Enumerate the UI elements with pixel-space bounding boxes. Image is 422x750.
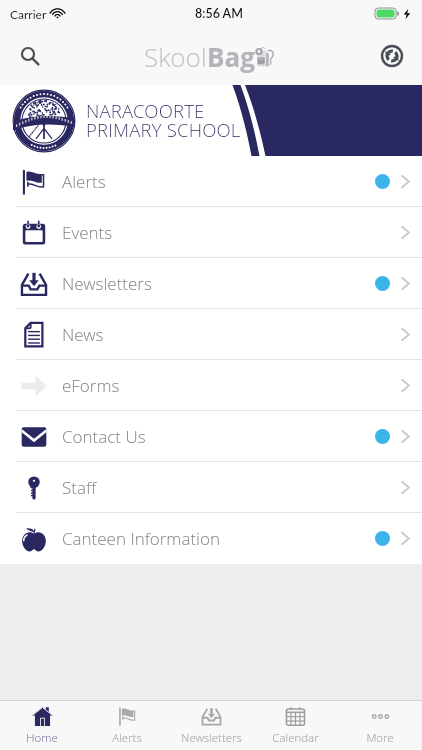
button[interactable]: Staff	[0, 462, 422, 513]
staticText: eForms	[62, 374, 120, 397]
staticText: Skool	[144, 39, 207, 74]
staticText: Contact Us	[62, 425, 146, 448]
button[interactable]: Contact Us	[0, 411, 422, 462]
staticText: Alerts	[62, 170, 106, 193]
staticText: Canteen Information	[62, 527, 220, 550]
staticText: Carrier	[10, 7, 47, 21]
button[interactable]: Refresh	[372, 36, 412, 76]
staticText: 8:56 AM	[195, 6, 243, 21]
staticText: Events	[62, 221, 113, 244]
staticText: More	[366, 730, 394, 746]
staticText: Bag	[207, 39, 255, 74]
staticText: Home	[26, 730, 58, 746]
button[interactable]: Alerts	[85, 701, 169, 750]
button[interactable]: Newsletters	[0, 258, 422, 309]
staticText: Alerts	[112, 730, 142, 746]
button[interactable]: News	[0, 309, 422, 360]
button[interactable]: Events	[0, 207, 422, 258]
button[interactable]: eForms	[0, 360, 422, 411]
button[interactable]: Canteen Information	[0, 513, 422, 564]
button[interactable]: Alerts	[0, 156, 422, 207]
staticText: News	[62, 323, 104, 346]
button[interactable]: Home	[0, 701, 84, 750]
button[interactable]: Calendar	[253, 701, 337, 750]
staticText: Staff	[62, 476, 97, 499]
staticText: Calendar	[272, 730, 319, 746]
button[interactable]: More	[338, 701, 422, 750]
staticText: Newsletters	[62, 272, 152, 295]
button[interactable]: Newsletters	[169, 701, 253, 750]
staticText: NARACOORTE PRIMARY SCHOOL	[86, 98, 241, 143]
staticText: Newsletters	[181, 730, 242, 746]
button[interactable]: Search	[10, 36, 50, 76]
